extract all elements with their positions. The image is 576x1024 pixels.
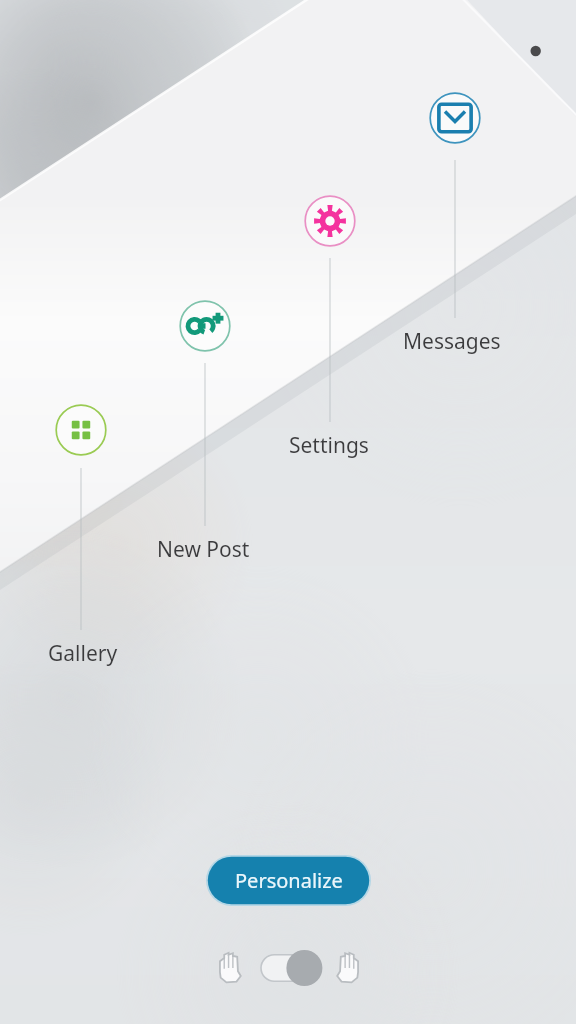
staticText: New Post: [157, 535, 250, 564]
button[interactable]: Gallery: [48, 639, 118, 668]
staticText: Settings: [289, 431, 369, 460]
staticText: Personalize: [235, 867, 343, 894]
button[interactable]: New Post: [157, 535, 250, 564]
staticText: Messages: [403, 327, 501, 356]
button[interactable]: Messages: [429, 92, 481, 144]
button[interactable]: Gallery: [55, 404, 107, 456]
button[interactable]: Messages: [403, 327, 501, 356]
button[interactable]: New Post: [179, 300, 231, 352]
button[interactable]: Right hand: [330, 948, 366, 988]
button[interactable]: Settings: [304, 195, 356, 247]
button[interactable]: Handedness toggle: [261, 950, 323, 986]
button[interactable]: Left hand: [212, 948, 248, 988]
button[interactable]: Settings: [289, 431, 369, 460]
button[interactable]: Personalize: [206, 855, 371, 906]
staticText: Gallery: [48, 639, 118, 668]
